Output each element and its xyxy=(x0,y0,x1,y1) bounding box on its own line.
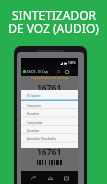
staticText: Cupón Diario con La Paga xyxy=(31,76,69,80)
staticText: Escuchar xyxy=(27,112,40,116)
button[interactable]: Home xyxy=(45,173,55,183)
staticText: 100% xyxy=(68,61,76,65)
staticText: 16761 xyxy=(37,146,62,158)
button[interactable]: Recents xyxy=(61,173,71,183)
staticText: 16761 xyxy=(37,82,62,94)
staticText: DE VOZ (AUDIO) xyxy=(8,20,99,36)
staticText: 7139 xyxy=(46,165,54,169)
button[interactable]: Comprobar xyxy=(21,117,78,125)
staticText: Escanear xyxy=(27,129,40,133)
button[interactable]: Actualizar Resultados xyxy=(21,133,78,141)
staticText: El Capitán xyxy=(27,94,41,98)
button[interactable]: Escuchar xyxy=(21,108,78,116)
staticText: DkCE - El Cup xyxy=(27,69,49,74)
button[interactable]: Compartir xyxy=(21,100,78,108)
button[interactable]: El Capitán xyxy=(21,90,78,100)
staticText: SINTETIZADOR xyxy=(12,7,96,23)
button[interactable]: Back xyxy=(28,173,38,183)
staticText: Compartir xyxy=(27,104,41,108)
staticText: Actualizar Resultados xyxy=(27,137,57,141)
button[interactable]: Escanear xyxy=(21,125,78,133)
staticText: Comprobar xyxy=(27,121,43,125)
